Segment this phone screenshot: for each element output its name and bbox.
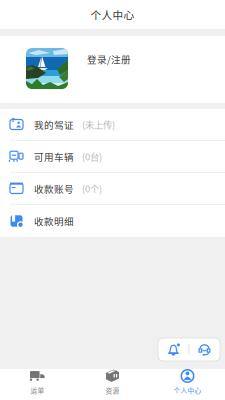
- button[interactable]: 个人中心: [150, 369, 225, 400]
- staticText: 个人中心: [90, 7, 134, 22]
- button[interactable]: 资源: [75, 369, 150, 400]
- button[interactable]: 收款账号: [0, 173, 225, 205]
- button[interactable]: 登录/注册: [0, 36, 225, 103]
- staticText: 个人中心: [173, 385, 201, 395]
- button[interactable]: 收款明细: [0, 205, 225, 237]
- staticText: 可用车辆: [34, 149, 74, 163]
- button[interactable]: Customer service: [189, 338, 219, 361]
- button[interactable]: 我的驾证: [0, 109, 225, 141]
- button[interactable]: 运单: [0, 369, 75, 400]
- staticText: 运单: [30, 385, 44, 395]
- button[interactable]: Notifications: [158, 338, 188, 361]
- staticText: (0台): [82, 150, 102, 163]
- button[interactable]: 可用车辆: [0, 141, 225, 173]
- staticText: 登录/注册: [87, 52, 131, 66]
- staticText: 我的驾证: [34, 117, 74, 131]
- staticText: (未上传): [82, 118, 115, 131]
- staticText: (0个): [82, 182, 102, 195]
- staticText: 收款账号: [34, 181, 74, 195]
- staticText: 收款明细: [34, 214, 74, 228]
- staticText: 资源: [105, 386, 119, 395]
